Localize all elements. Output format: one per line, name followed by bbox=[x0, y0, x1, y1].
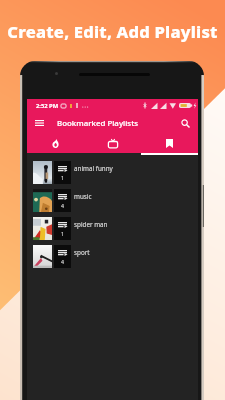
staticText: 4 bbox=[61, 258, 64, 265]
button[interactable]: 1 bbox=[27, 214, 198, 242]
staticText: 2:52 PM bbox=[36, 102, 59, 110]
button[interactable]: Search bbox=[178, 116, 192, 130]
staticText: Create, Edit, Add Playlist bbox=[7, 20, 218, 43]
button[interactable]: Bookmarks bbox=[141, 134, 198, 153]
button[interactable]: 1 bbox=[27, 158, 198, 186]
staticText: Bookmarked Playlists bbox=[57, 118, 138, 129]
staticText: animal funny bbox=[74, 164, 113, 173]
staticText: sport bbox=[74, 248, 90, 257]
staticText: spider man bbox=[74, 220, 108, 229]
button[interactable]: 4 bbox=[27, 186, 198, 214]
staticText: 4 bbox=[61, 202, 64, 209]
button[interactable]: Trending bbox=[27, 134, 84, 153]
staticText: 1 bbox=[61, 174, 64, 181]
button[interactable]: 4 bbox=[27, 242, 198, 270]
button[interactable]: Subscriptions bbox=[84, 134, 141, 153]
staticText: 1 bbox=[61, 230, 64, 237]
button[interactable]: Open navigation menu bbox=[35, 116, 49, 130]
staticText: music bbox=[74, 192, 92, 201]
